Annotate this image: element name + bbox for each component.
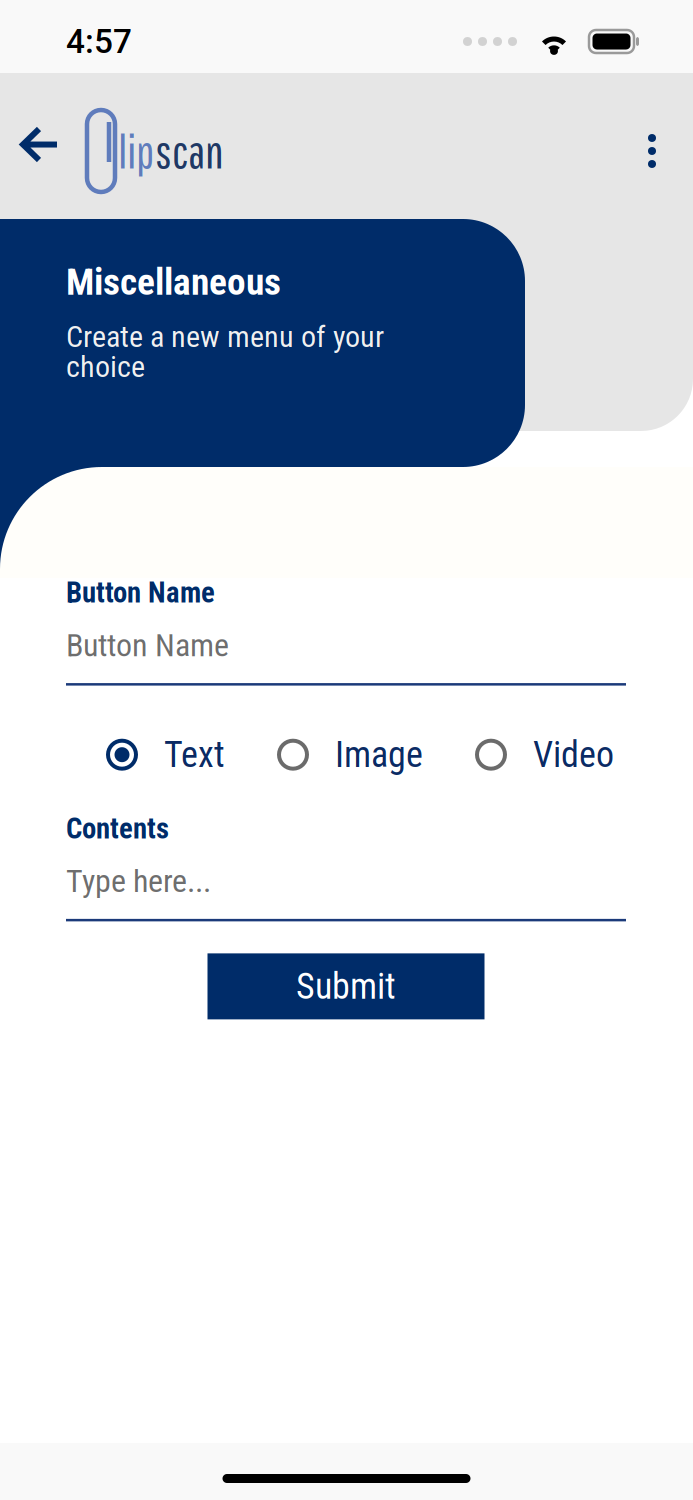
staticText: Video xyxy=(533,734,614,776)
staticText: Text xyxy=(164,734,225,776)
staticText: Type here... xyxy=(66,862,211,900)
staticText: Button Name xyxy=(66,627,229,664)
button[interactable]: More options xyxy=(630,114,674,188)
button[interactable]: Back xyxy=(7,110,73,179)
button[interactable]: Submit xyxy=(207,953,484,1019)
staticText: scan xyxy=(155,124,224,178)
staticText: Button Name xyxy=(66,576,215,610)
button[interactable]: Image xyxy=(277,734,423,776)
staticText: Miscellaneous xyxy=(66,260,281,304)
button[interactable]: Video xyxy=(475,734,614,776)
button[interactable]: Text xyxy=(106,734,225,776)
staticText: 4:57 xyxy=(66,22,132,61)
staticText: Submit xyxy=(296,965,396,1007)
staticText: Image xyxy=(335,734,423,776)
staticText: choice xyxy=(66,349,145,384)
staticText: Create a new menu of your xyxy=(66,319,384,354)
staticText: lip xyxy=(118,124,154,178)
staticText: Contents xyxy=(66,812,169,845)
